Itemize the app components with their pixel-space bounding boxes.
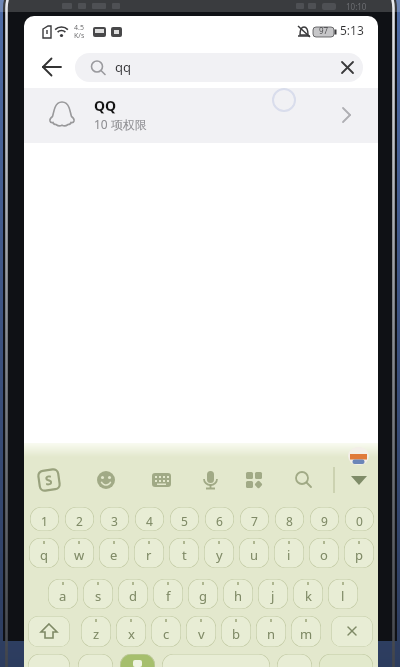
button[interactable]: t: [169, 538, 199, 568]
button[interactable]: v: [186, 616, 216, 647]
staticText: K/s: [74, 31, 85, 41]
staticText: 4.5: [74, 23, 84, 33]
button[interactable]: [277, 654, 312, 667]
button[interactable]: y: [204, 538, 234, 568]
button[interactable]: j: [258, 579, 288, 609]
staticText: b: [232, 625, 240, 643]
staticText: 0: [356, 513, 363, 529]
button[interactable]: S: [38, 469, 60, 491]
button[interactable]: e: [99, 538, 129, 568]
staticText: w: [74, 546, 85, 564]
staticText: 9: [321, 513, 328, 529]
button[interactable]: [319, 654, 373, 667]
button[interactable]: 7: [240, 507, 269, 531]
staticText: a: [59, 587, 67, 605]
staticText: 1: [41, 513, 48, 529]
button[interactable]: k: [293, 579, 323, 609]
staticText: 6: [216, 513, 223, 529]
staticText: s: [95, 587, 102, 605]
button[interactable]: 1: [30, 507, 59, 531]
button[interactable]: h: [223, 579, 253, 609]
staticText: 8: [286, 513, 293, 529]
button[interactable]: [345, 466, 373, 494]
staticText: 97: [319, 25, 329, 36]
button[interactable]: [120, 654, 155, 667]
button[interactable]: i: [274, 538, 304, 568]
button[interactable]: [78, 654, 113, 667]
staticText: n: [267, 625, 276, 643]
staticText: 2: [76, 513, 83, 529]
button[interactable]: p: [344, 538, 374, 568]
staticText: S: [44, 470, 54, 489]
staticText: v: [198, 625, 205, 643]
button[interactable]: [240, 466, 268, 494]
staticText: 7: [251, 513, 258, 529]
button[interactable]: x: [116, 616, 146, 647]
button[interactable]: [331, 616, 373, 647]
staticText: qq: [115, 58, 131, 76]
staticText: 4: [146, 513, 153, 529]
staticText: p: [355, 546, 363, 564]
button[interactable]: 6: [205, 507, 234, 531]
button[interactable]: 8: [275, 507, 304, 531]
staticText: QQ: [94, 96, 117, 115]
button[interactable]: [35, 466, 63, 494]
staticText: d: [129, 587, 137, 605]
button[interactable]: o: [309, 538, 339, 568]
button[interactable]: [348, 447, 369, 465]
staticText: r: [146, 546, 152, 564]
button[interactable]: [147, 466, 175, 494]
button[interactable]: [289, 466, 317, 494]
button[interactable]: a: [48, 579, 78, 609]
staticText: i: [287, 546, 291, 564]
button[interactable]: QQ: [24, 88, 378, 143]
button[interactable]: [162, 654, 270, 667]
button[interactable]: n: [256, 616, 286, 647]
button[interactable]: f: [153, 579, 183, 609]
button[interactable]: g: [188, 579, 218, 609]
button[interactable]: z: [81, 616, 111, 647]
button[interactable]: 9: [310, 507, 339, 531]
staticText: q: [40, 546, 48, 564]
button[interactable]: [28, 654, 70, 667]
button[interactable]: l: [328, 579, 358, 609]
staticText: o: [320, 546, 328, 564]
staticText: e: [110, 546, 118, 564]
button[interactable]: 3: [100, 507, 129, 531]
staticText: 3: [111, 513, 118, 529]
staticText: f: [166, 587, 171, 605]
staticText: h: [234, 587, 243, 605]
staticText: j: [271, 587, 275, 605]
button[interactable]: u: [239, 538, 269, 568]
button[interactable]: [38, 53, 66, 81]
button[interactable]: w: [64, 538, 94, 568]
button[interactable]: 0: [345, 507, 374, 531]
staticText: g: [199, 587, 207, 605]
button[interactable]: d: [118, 579, 148, 609]
button[interactable]: 2: [65, 507, 94, 531]
button[interactable]: [92, 466, 120, 494]
staticText: 10 项权限: [94, 116, 147, 132]
staticText: 5: [181, 513, 188, 529]
button[interactable]: c: [151, 616, 181, 647]
button[interactable]: b: [221, 616, 251, 647]
staticText: z: [93, 625, 100, 643]
staticText: m: [300, 625, 313, 643]
staticText: c: [163, 625, 170, 643]
button[interactable]: r: [134, 538, 164, 568]
staticText: y: [216, 546, 223, 564]
button[interactable]: s: [83, 579, 113, 609]
button[interactable]: m: [291, 616, 321, 647]
button[interactable]: q: [29, 538, 59, 568]
button[interactable]: [196, 466, 224, 494]
button[interactable]: 4: [135, 507, 164, 531]
staticText: l: [341, 587, 345, 605]
staticText: u: [250, 546, 259, 564]
button[interactable]: 5: [170, 507, 199, 531]
staticText: t: [182, 546, 187, 564]
button[interactable]: [337, 57, 359, 79]
staticText: k: [305, 587, 312, 605]
staticText: x: [128, 625, 135, 643]
button[interactable]: [28, 616, 70, 647]
button[interactable]: qq: [75, 53, 363, 82]
